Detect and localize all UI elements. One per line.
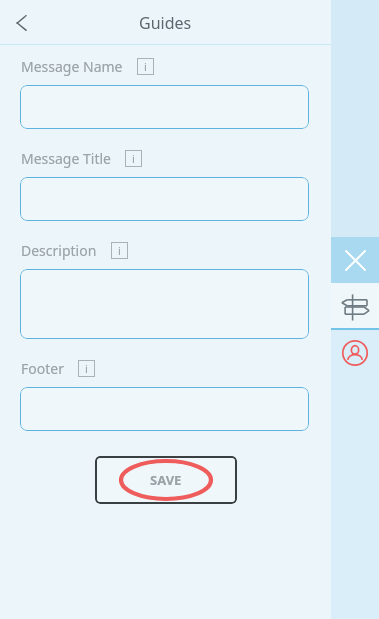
button[interactable]: SAVE: [95, 456, 237, 504]
button[interactable]: Info: [111, 242, 128, 259]
staticText: i: [144, 59, 147, 74]
button[interactable]: Message Title: [20, 177, 309, 221]
button[interactable]: Info: [137, 58, 154, 75]
staticText: i: [132, 151, 135, 166]
staticText: i: [85, 361, 88, 376]
button[interactable]: Close: [331, 237, 379, 283]
button[interactable]: Profile: [331, 330, 379, 376]
button[interactable]: Description: [20, 269, 309, 339]
staticText: Message Name: [21, 57, 123, 76]
button[interactable]: Back: [0, 1, 44, 45]
staticText: i: [118, 243, 121, 258]
button[interactable]: Footer: [20, 387, 309, 431]
button[interactable]: Info: [125, 150, 142, 167]
button[interactable]: Guides: [331, 283, 379, 330]
staticText: Guides: [139, 12, 192, 34]
staticText: Description: [21, 241, 97, 260]
staticText: Message Title: [21, 149, 111, 168]
staticText: Footer: [21, 359, 64, 378]
staticText: SAVE: [150, 471, 182, 489]
button[interactable]: Message Name: [20, 85, 309, 129]
button[interactable]: Info: [78, 360, 95, 377]
